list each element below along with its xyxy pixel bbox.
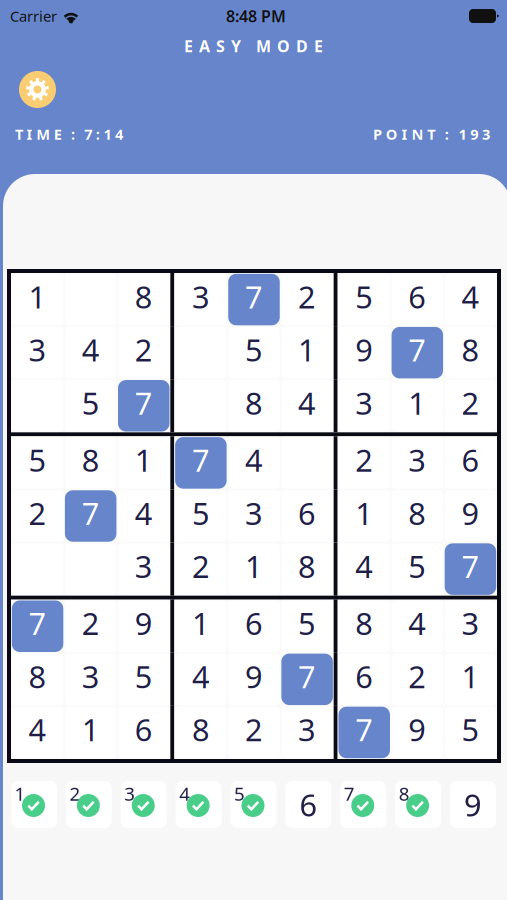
staticText: 4 xyxy=(29,709,47,750)
button[interactable]: 3 xyxy=(281,706,334,759)
button[interactable]: 7 xyxy=(281,653,334,706)
staticText: 1 xyxy=(82,709,100,750)
button[interactable]: 3 xyxy=(338,379,391,432)
button[interactable]: 1 xyxy=(11,781,57,828)
button[interactable]: 7 xyxy=(117,379,170,432)
staticText: 8 xyxy=(399,781,410,806)
button[interactable]: 6 xyxy=(281,489,334,542)
button[interactable]: 1 xyxy=(391,379,444,432)
button[interactable]: 6 xyxy=(227,600,280,653)
button[interactable]: 1 xyxy=(117,436,170,489)
button[interactable]: 8 xyxy=(64,436,117,489)
button[interactable]: 5 xyxy=(281,600,334,653)
staticText: M xyxy=(256,35,271,57)
button[interactable]: 3 xyxy=(391,436,444,489)
button[interactable]: 5 xyxy=(11,436,64,489)
button[interactable]: 2 xyxy=(11,489,64,542)
button[interactable]: 4 xyxy=(444,273,497,326)
button[interactable]: 4 xyxy=(11,706,64,759)
button[interactable]: 7 xyxy=(391,326,444,379)
button[interactable]: 1 xyxy=(64,706,117,759)
button[interactable]: 5 xyxy=(230,781,276,828)
button[interactable]: 5 xyxy=(227,326,280,379)
button[interactable]: 7 xyxy=(174,436,227,489)
button[interactable]: 2 xyxy=(281,273,334,326)
staticText: 5 xyxy=(135,656,153,697)
button[interactable]: 4 xyxy=(281,379,334,432)
button[interactable]: 9 xyxy=(338,326,391,379)
button[interactable]: 3 xyxy=(11,326,64,379)
button[interactable]: 6 xyxy=(391,273,444,326)
button[interactable]: 3 xyxy=(227,489,280,542)
button[interactable]: 9 xyxy=(117,600,170,653)
button[interactable]: 3 xyxy=(444,600,497,653)
button[interactable]: 7 xyxy=(64,489,117,542)
button[interactable]: 5 xyxy=(64,379,117,432)
button[interactable] xyxy=(281,436,334,489)
button[interactable]: 6 xyxy=(338,653,391,706)
button[interactable]: 2 xyxy=(391,653,444,706)
button[interactable]: 7 xyxy=(11,600,64,653)
button[interactable]: 7 xyxy=(338,706,391,759)
button[interactable]: 8 xyxy=(117,273,170,326)
button[interactable]: 4 xyxy=(391,600,444,653)
button[interactable]: 2 xyxy=(338,436,391,489)
button[interactable]: 5 xyxy=(391,543,444,596)
button[interactable] xyxy=(64,543,117,596)
button[interactable]: 6 xyxy=(117,706,170,759)
button[interactable]: 9 xyxy=(450,781,496,828)
button[interactable]: 8 xyxy=(391,489,444,542)
button[interactable]: 1 xyxy=(174,600,227,653)
button[interactable] xyxy=(174,326,227,379)
button[interactable] xyxy=(174,379,227,432)
button[interactable]: 4 xyxy=(176,781,222,828)
button[interactable]: 4 xyxy=(174,653,227,706)
button[interactable]: 1 xyxy=(338,489,391,542)
button[interactable]: 2 xyxy=(227,706,280,759)
button[interactable]: 8 xyxy=(227,379,280,432)
button[interactable]: 1 xyxy=(227,543,280,596)
button[interactable]: 3 xyxy=(121,781,167,828)
button[interactable]: 1 xyxy=(281,326,334,379)
button[interactable]: 2 xyxy=(117,326,170,379)
button[interactable]: 4 xyxy=(117,489,170,542)
button[interactable]: 2 xyxy=(64,600,117,653)
button[interactable]: 7 xyxy=(444,543,497,596)
button[interactable]: 5 xyxy=(338,273,391,326)
button[interactable]: 9 xyxy=(444,489,497,542)
staticText: T xyxy=(15,124,23,144)
button[interactable]: 8 xyxy=(338,600,391,653)
button[interactable]: 4 xyxy=(64,326,117,379)
button[interactable]: 4 xyxy=(227,436,280,489)
button[interactable]: 8 xyxy=(395,781,441,828)
button[interactable]: 3 xyxy=(64,653,117,706)
button[interactable]: 7 xyxy=(340,781,386,828)
button[interactable]: 9 xyxy=(391,706,444,759)
button[interactable]: Settings xyxy=(19,71,56,108)
button[interactable]: 2 xyxy=(444,379,497,432)
button[interactable] xyxy=(11,543,64,596)
button[interactable]: 8 xyxy=(281,543,334,596)
button[interactable]: 2 xyxy=(66,781,112,828)
staticText: 2 xyxy=(135,329,153,370)
button[interactable]: 8 xyxy=(444,326,497,379)
button[interactable]: 9 xyxy=(227,653,280,706)
button[interactable]: 6 xyxy=(444,436,497,489)
staticText: 8 xyxy=(135,276,153,317)
button[interactable]: 1 xyxy=(444,653,497,706)
button[interactable]: 3 xyxy=(174,273,227,326)
button[interactable]: 5 xyxy=(444,706,497,759)
button[interactable]: 6 xyxy=(285,781,331,828)
button[interactable]: 8 xyxy=(174,706,227,759)
button[interactable]: 7 xyxy=(227,273,280,326)
button[interactable]: 5 xyxy=(174,489,227,542)
button[interactable]: 8 xyxy=(11,653,64,706)
button[interactable]: 5 xyxy=(117,653,170,706)
button[interactable]: 3 xyxy=(117,543,170,596)
button[interactable]: 4 xyxy=(338,543,391,596)
button[interactable]: 1 xyxy=(11,273,64,326)
button[interactable]: 2 xyxy=(174,543,227,596)
